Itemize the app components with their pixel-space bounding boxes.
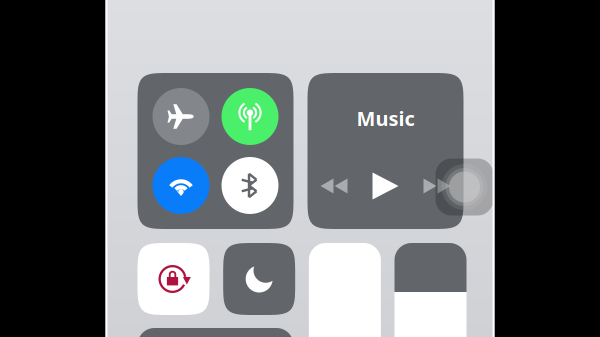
button[interactable]: Do Not Disturb bbox=[223, 243, 295, 315]
button[interactable]: Previous Track bbox=[308, 169, 359, 203]
staticText: Music bbox=[356, 105, 414, 132]
button[interactable]: Next Track bbox=[411, 169, 462, 203]
button[interactable]: Wi-Fi bbox=[152, 157, 209, 214]
button[interactable]: Cellular Data bbox=[221, 88, 278, 145]
button[interactable]: Brightness bbox=[309, 243, 381, 337]
button[interactable]: Portrait Orientation Lock bbox=[137, 243, 209, 315]
button[interactable]: Play bbox=[359, 169, 411, 203]
button[interactable]: Volume bbox=[394, 243, 466, 337]
button[interactable]: Bluetooth bbox=[221, 157, 278, 214]
button[interactable]: Airplane Mode bbox=[152, 88, 209, 145]
button[interactable]: AirDrop bbox=[137, 328, 293, 337]
